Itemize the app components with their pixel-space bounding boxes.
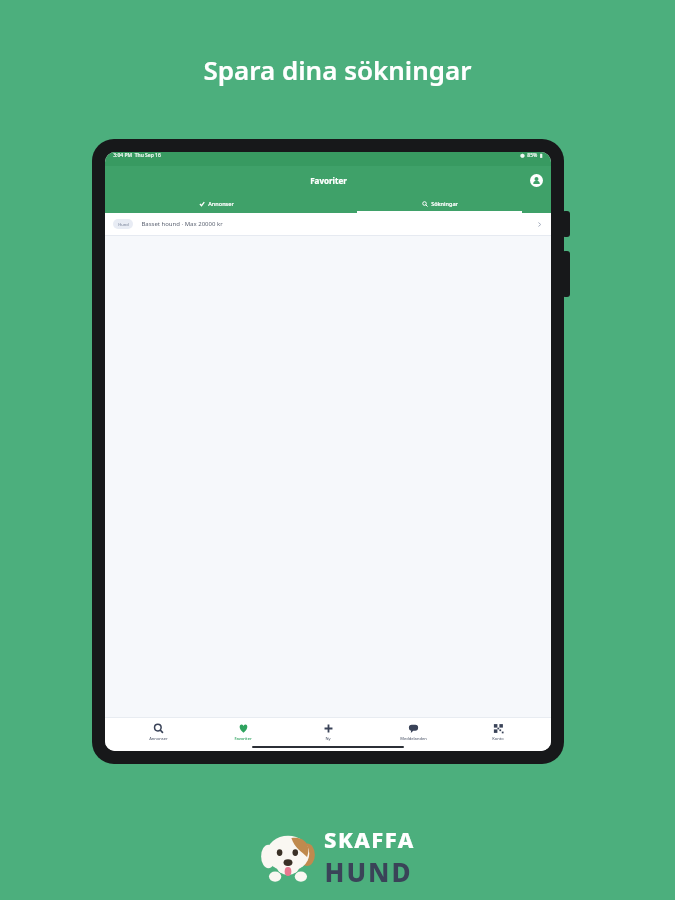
button[interactable]: Hund	[105, 213, 551, 235]
staticText: Meddelanden	[400, 736, 427, 741]
button[interactable]: Ny	[296, 721, 360, 743]
staticText: SKAFFA	[324, 824, 415, 854]
staticText: Favoriter	[234, 736, 252, 741]
button[interactable]: Annonser	[105, 194, 328, 213]
staticText: Favoriter	[310, 175, 347, 186]
staticText: Ny	[325, 736, 331, 741]
staticText: Hund	[118, 222, 129, 227]
staticText: Annonser	[149, 736, 168, 741]
staticText: Annonser	[208, 200, 234, 207]
staticText: ● 85% ▮	[520, 152, 543, 159]
button[interactable]: Konto	[466, 721, 530, 743]
button[interactable]: Favoriter	[211, 721, 275, 743]
staticText: HUND	[324, 854, 413, 889]
staticText: Spara dina sökningar	[203, 52, 472, 87]
staticText: 3:04 PM Thu Sep 16	[113, 152, 161, 159]
button[interactable]: Sökningar	[328, 194, 551, 213]
staticText: Konto	[492, 736, 504, 741]
staticText: Basset hound · Max 20000 kr	[141, 220, 223, 228]
button[interactable]: Profil	[530, 174, 543, 187]
button[interactable]: Annonser	[126, 721, 190, 743]
staticText: Sökningar	[431, 200, 458, 207]
button[interactable]: Meddelanden	[381, 721, 445, 743]
